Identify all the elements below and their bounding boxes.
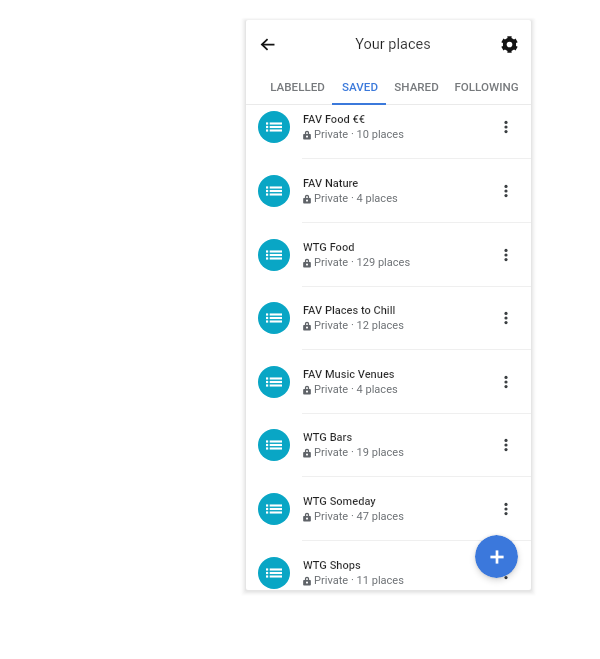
staticText: Private · 47 places: [314, 510, 404, 523]
button[interactable]: More options: [489, 174, 523, 208]
staticText: LABELLED: [270, 80, 325, 94]
staticText: Private · 10 places: [314, 128, 404, 141]
button[interactable]: FAV Nature: [246, 159, 531, 223]
staticText: SAVED: [342, 80, 378, 94]
button[interactable]: Create new list: [475, 535, 518, 578]
button[interactable]: Back: [248, 24, 288, 64]
staticText: FAV Nature: [303, 177, 359, 190]
staticText: Private · 12 places: [314, 319, 404, 332]
button[interactable]: FAV Music Venues: [246, 350, 531, 414]
button[interactable]: WTG Shops: [246, 541, 531, 590]
button[interactable]: FAV Places to Chill: [246, 286, 531, 350]
button[interactable]: More options: [489, 492, 523, 526]
button[interactable]: LABELLED: [260, 68, 334, 105]
staticText: WTG Food: [303, 241, 355, 254]
button[interactable]: SAVED: [334, 68, 385, 105]
button[interactable]: SHARED: [386, 68, 447, 105]
button[interactable]: More options: [489, 238, 523, 272]
button[interactable]: More options: [489, 110, 523, 144]
button[interactable]: More options: [489, 556, 523, 590]
staticText: Private · 19 places: [314, 446, 404, 459]
button[interactable]: FAV Food €€: [246, 105, 531, 159]
button[interactable]: More options: [489, 365, 523, 399]
staticText: WTG Shops: [303, 559, 361, 572]
staticText: WTG Bars: [303, 431, 353, 444]
staticText: Private · 4 places: [314, 383, 398, 396]
button[interactable]: WTG Someday: [246, 477, 531, 541]
staticText: FOLLOWING: [454, 80, 519, 94]
staticText: FAV Food €€: [303, 113, 365, 126]
button[interactable]: WTG Food: [246, 223, 531, 287]
button[interactable]: More options: [489, 301, 523, 335]
button[interactable]: FOLLOWING: [447, 68, 526, 105]
staticText: Private · 11 places: [314, 574, 404, 587]
staticText: Your places: [355, 36, 431, 53]
staticText: FAV Places to Chill: [303, 304, 396, 317]
staticText: Private · 129 places: [314, 256, 411, 269]
button[interactable]: Settings: [489, 24, 529, 64]
staticText: WTG Someday: [303, 495, 376, 508]
staticText: SHARED: [394, 80, 439, 94]
button[interactable]: More options: [489, 428, 523, 462]
staticText: Private · 4 places: [314, 192, 398, 205]
staticText: FAV Music Venues: [303, 368, 395, 381]
button[interactable]: WTG Bars: [246, 413, 531, 477]
